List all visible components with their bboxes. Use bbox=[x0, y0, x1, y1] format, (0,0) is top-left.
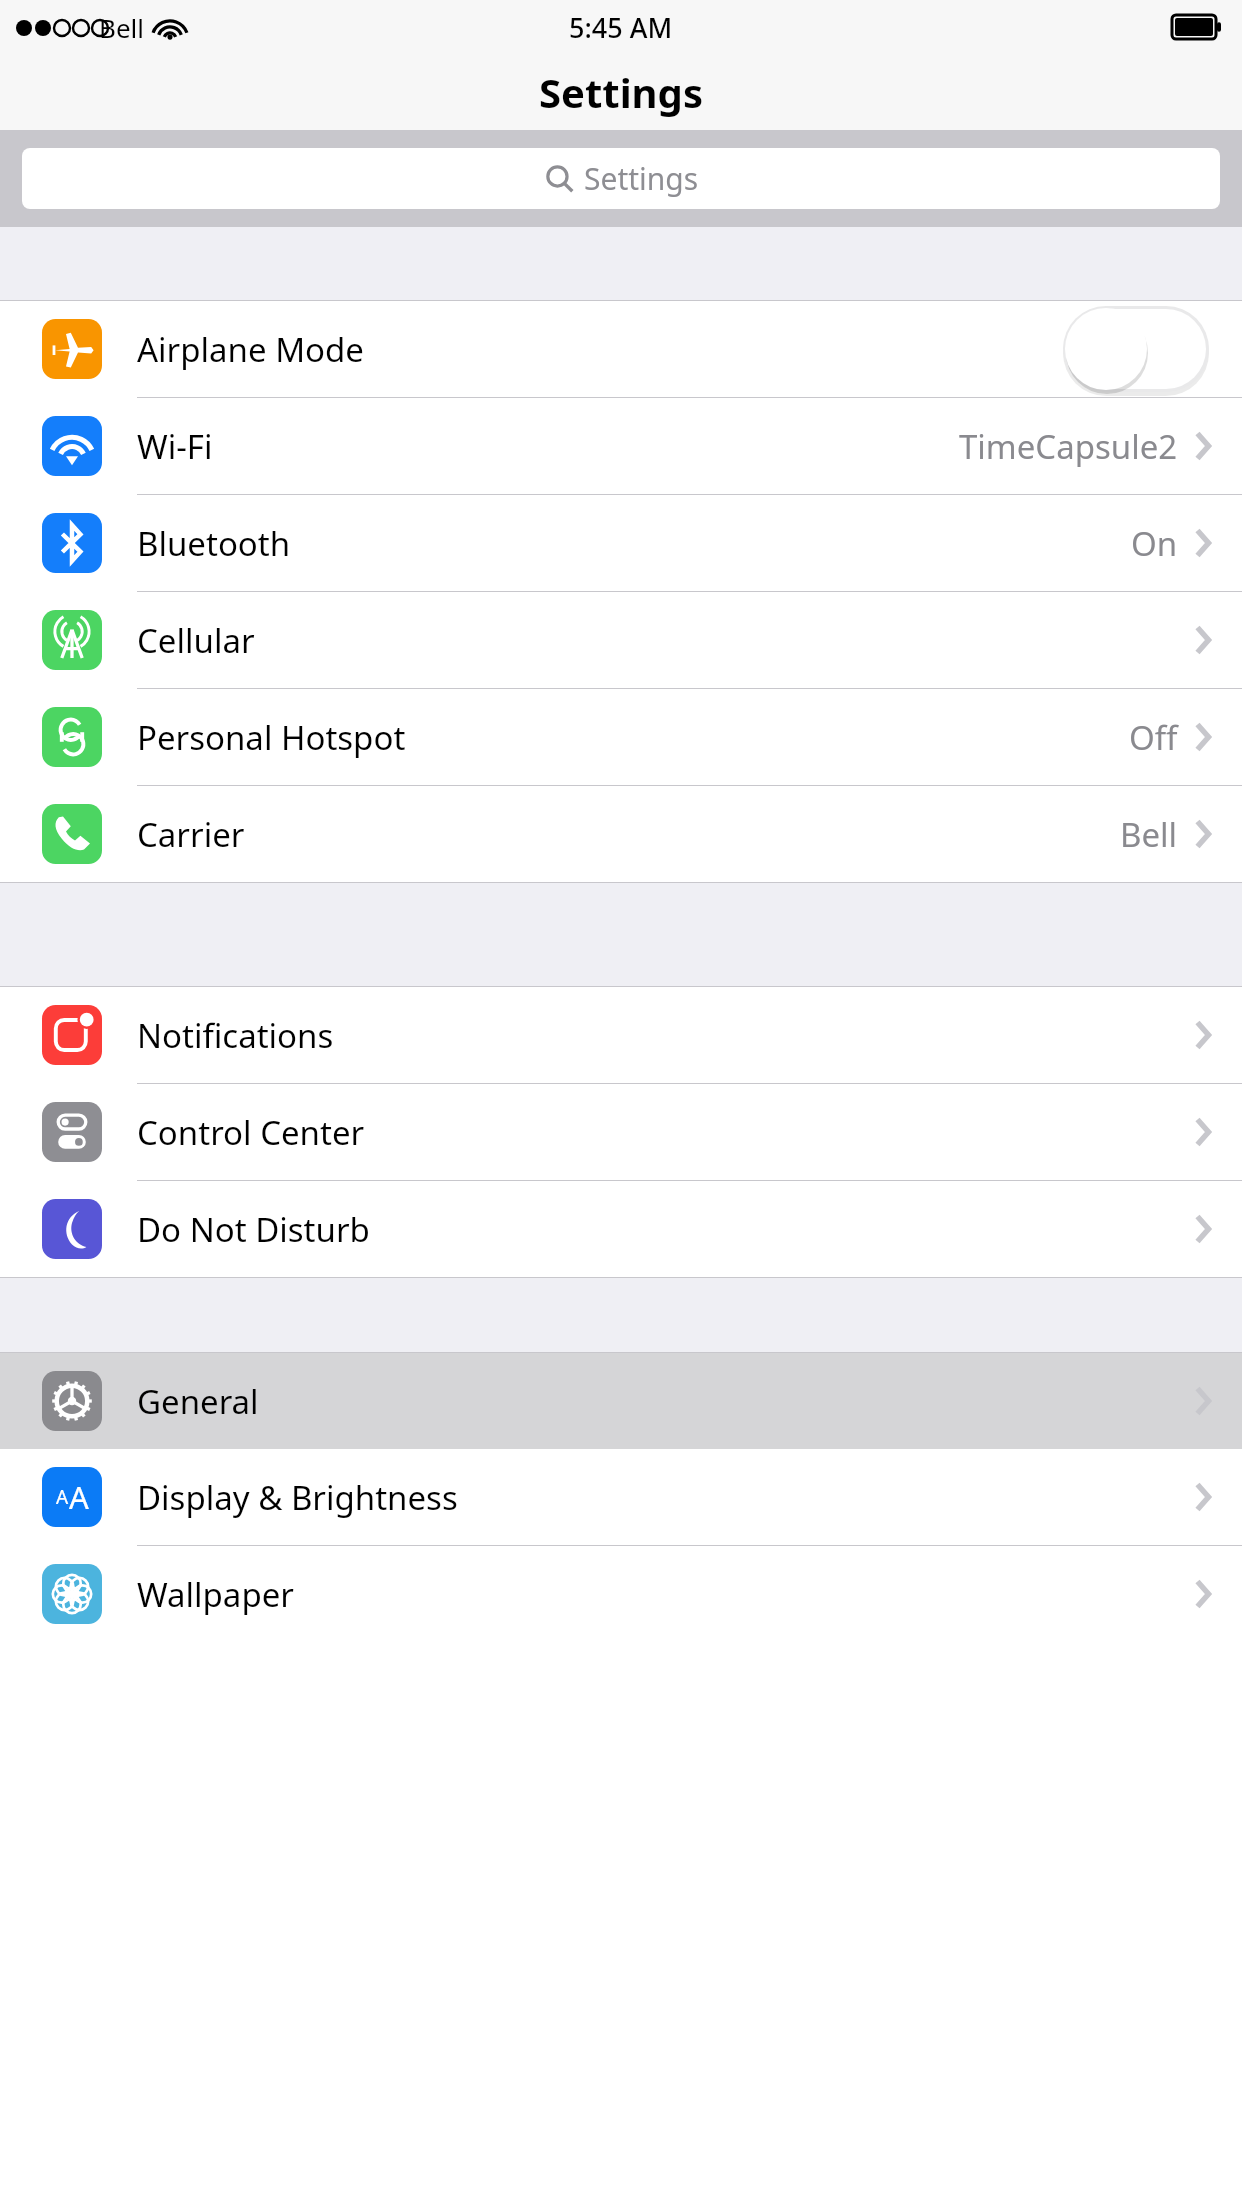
staticText: 5:45 AM bbox=[569, 9, 673, 46]
button[interactable]: Notifications bbox=[0, 987, 1242, 1083]
button[interactable]: Control Center bbox=[0, 1084, 1242, 1180]
button[interactable]: Do Not Disturb bbox=[0, 1181, 1242, 1277]
button[interactable]: A bbox=[0, 1449, 1242, 1545]
staticText: Airplane Mode bbox=[137, 327, 364, 372]
staticText: Wallpaper bbox=[137, 1572, 294, 1617]
staticText: General bbox=[137, 1379, 259, 1424]
staticText: Cellular bbox=[137, 618, 255, 663]
button[interactable]: Airplane Mode bbox=[0, 301, 1242, 397]
staticText: Off bbox=[1129, 715, 1178, 760]
button[interactable]: General bbox=[0, 1353, 1242, 1449]
staticText: TimeCapsule2 bbox=[959, 424, 1178, 469]
staticText: Settings bbox=[539, 65, 703, 119]
staticText: A bbox=[69, 1476, 89, 1518]
staticText: Bell bbox=[1120, 812, 1178, 857]
staticText: Notifications bbox=[137, 1013, 334, 1058]
staticText: Personal Hotspot bbox=[137, 715, 406, 760]
button[interactable]: Cellular bbox=[0, 592, 1242, 688]
staticText: On bbox=[1131, 521, 1178, 566]
staticText: A bbox=[56, 1484, 69, 1510]
button[interactable]: Wallpaper bbox=[0, 1546, 1242, 1642]
button[interactable]: Personal Hotspot bbox=[0, 689, 1242, 785]
button[interactable]: Wi-Fi bbox=[0, 398, 1242, 494]
staticText: Bell bbox=[99, 10, 144, 45]
staticText: Display & Brightness bbox=[137, 1475, 458, 1520]
staticText: Wi-Fi bbox=[137, 424, 213, 469]
staticText: Bluetooth bbox=[137, 521, 291, 566]
staticText: Control Center bbox=[137, 1110, 365, 1155]
button[interactable]: Carrier bbox=[0, 786, 1242, 882]
staticText: Settings bbox=[584, 158, 699, 199]
button[interactable]: Bluetooth bbox=[0, 495, 1242, 591]
button[interactable]: Settings bbox=[22, 148, 1220, 209]
staticText: Do Not Disturb bbox=[137, 1207, 370, 1252]
staticText: Carrier bbox=[137, 812, 245, 857]
